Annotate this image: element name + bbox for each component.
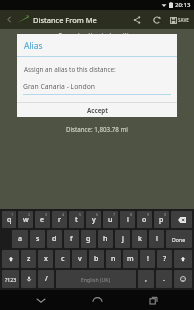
staticText: 7 — [113, 212, 116, 217]
staticText: Gran Canaria - London — [23, 82, 95, 91]
staticText: q — [7, 215, 12, 225]
button[interactable]: Emoji — [174, 270, 192, 288]
button[interactable]: q — [2, 211, 16, 228]
staticText: w — [23, 215, 29, 225]
button[interactable]: o — [137, 211, 152, 228]
staticText: u — [108, 215, 113, 225]
button[interactable]: i — [120, 211, 135, 228]
button[interactable]: e — [35, 211, 50, 228]
button[interactable]: Hide keyboard — [26, 291, 56, 309]
staticText: b — [94, 254, 99, 264]
staticText: g — [86, 234, 91, 244]
staticText: . — [163, 274, 165, 284]
button[interactable]: j — [115, 230, 130, 248]
staticText: ?123 — [5, 276, 17, 283]
button[interactable]: Navigate up — [3, 13, 16, 26]
staticText: Distance: 1,803.78 mi — [66, 125, 128, 133]
staticText: p — [159, 215, 164, 225]
button[interactable]: c — [55, 250, 70, 268]
staticText: v — [78, 254, 82, 264]
staticText: Alias — [24, 40, 43, 52]
button[interactable]: x — [38, 250, 53, 268]
button[interactable]: g — [81, 230, 96, 248]
button[interactable]: Shift — [174, 250, 192, 268]
button[interactable]: SAVE — [170, 13, 189, 27]
staticText: Accept — [87, 106, 108, 114]
staticText: j — [122, 234, 124, 244]
staticText: e — [40, 215, 45, 225]
staticText: m — [127, 254, 134, 264]
staticText: r — [58, 215, 61, 225]
staticText: ! — [147, 254, 149, 264]
button[interactable]: Share — [130, 13, 144, 27]
staticText: 4 — [62, 212, 65, 217]
staticText: ? — [163, 254, 167, 264]
button[interactable]: p — [154, 211, 169, 228]
button[interactable]: Voice input — [21, 270, 36, 288]
button[interactable]: u — [103, 211, 118, 228]
staticText: a — [18, 234, 23, 244]
button[interactable]: ? — [157, 250, 172, 268]
staticText: Distance From Me — [33, 15, 97, 25]
staticText: h — [103, 234, 108, 244]
button[interactable]: / — [38, 270, 54, 288]
button[interactable]: Delete — [171, 211, 192, 228]
staticText: 8 — [130, 212, 133, 217]
staticText: 3 — [45, 212, 48, 217]
staticText: k — [138, 234, 142, 244]
button[interactable]: k — [132, 230, 147, 248]
staticText: c — [61, 254, 65, 264]
staticText: 0 — [164, 212, 167, 217]
button[interactable]: z — [21, 250, 36, 268]
staticText: n — [111, 254, 116, 264]
button[interactable]: n — [106, 250, 121, 268]
staticText: 20:13 — [175, 1, 191, 9]
staticText: Assign an alias to this distance: — [24, 65, 116, 74]
button[interactable]: a — [12, 230, 28, 248]
staticText: o — [142, 215, 147, 225]
staticText: 6 — [96, 212, 99, 217]
staticText: SAVE — [178, 17, 189, 23]
button[interactable]: Done — [166, 230, 192, 248]
button[interactable]: v — [72, 250, 87, 268]
button[interactable]: l — [149, 230, 164, 248]
button[interactable]: , — [138, 270, 154, 288]
staticText: l — [156, 234, 158, 244]
button[interactable]: t — [69, 211, 84, 228]
staticText: t — [75, 215, 78, 225]
staticText: Done — [172, 236, 186, 243]
staticText: d — [52, 234, 57, 244]
staticText: i — [127, 215, 129, 225]
staticText: x — [44, 254, 48, 264]
staticText: 9 — [147, 212, 150, 217]
button[interactable]: . — [156, 270, 172, 288]
button[interactable]: English (UK) — [56, 270, 136, 288]
button[interactable]: m — [123, 250, 138, 268]
button[interactable]: ! — [140, 250, 155, 268]
button[interactable]: Home — [82, 291, 112, 309]
staticText: f — [70, 234, 73, 244]
staticText: 1 — [11, 212, 14, 217]
staticText: y — [92, 215, 96, 225]
button[interactable]: Accept — [17, 103, 177, 117]
button[interactable]: f — [64, 230, 79, 248]
button[interactable]: y — [86, 211, 101, 228]
staticText: / — [45, 274, 48, 284]
button[interactable]: d — [47, 230, 62, 248]
button[interactable]: Refresh — [150, 13, 164, 27]
staticText: 2 — [28, 212, 31, 217]
button[interactable]: ?123 — [2, 270, 19, 288]
button[interactable]: r — [52, 211, 67, 228]
button[interactable]: b — [89, 250, 104, 268]
button[interactable]: Shift — [2, 250, 19, 268]
button[interactable]: h — [98, 230, 113, 248]
button[interactable]: Recent apps — [138, 291, 168, 309]
staticText: English (UK) — [81, 276, 111, 283]
button[interactable]: w — [18, 211, 33, 228]
button[interactable]: s — [30, 230, 45, 248]
staticText: , — [145, 274, 147, 284]
staticText: s — [36, 234, 40, 244]
staticText: z — [27, 254, 31, 264]
staticText: Current estimated position — [58, 31, 137, 39]
staticText: 5 — [79, 212, 82, 217]
